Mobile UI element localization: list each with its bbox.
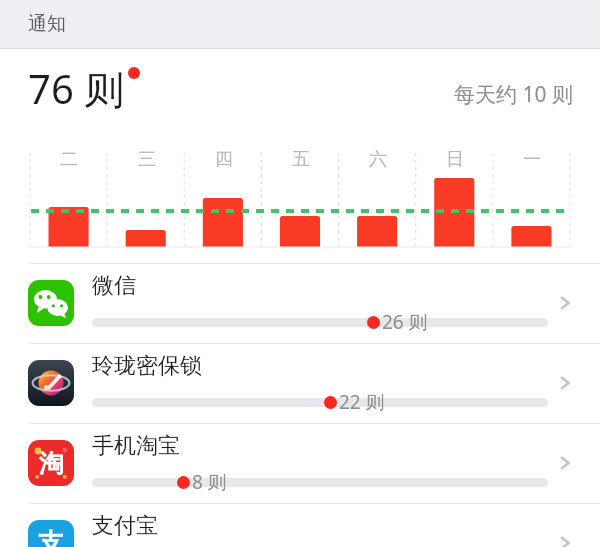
staticText: 22 则 [339,389,385,415]
staticText: 8 则 [192,469,227,495]
button[interactable]: 微信 [0,263,600,343]
staticText: 手机淘宝 [92,432,180,460]
staticText: 微信 [92,272,136,300]
staticText: 26 则 [382,309,428,335]
other: 查看详情 [554,292,576,314]
staticText: 一 [523,148,541,171]
staticText: 每天约 10 则 [454,80,573,109]
staticText: 三 [138,148,156,171]
staticText: 玲珑密保锁 [92,352,202,380]
staticText: 四 [215,148,233,171]
button[interactable]: 支 [0,503,600,547]
other: 查看详情 [554,532,576,547]
staticText: 通知 [28,12,66,36]
button[interactable]: 淘 [0,423,600,503]
staticText: 五 [292,148,310,171]
staticText: 二 [60,148,78,171]
staticText: 支 [38,527,64,547]
staticText: 日 [446,148,464,171]
staticText: 支付宝 [92,512,158,540]
staticText: 76 则 [28,61,125,116]
other: 查看详情 [554,372,576,394]
button[interactable]: 玲珑密保锁 [0,343,600,423]
staticText: 六 [369,148,387,171]
other: 查看详情 [554,452,576,474]
staticText: 淘 [39,448,64,479]
